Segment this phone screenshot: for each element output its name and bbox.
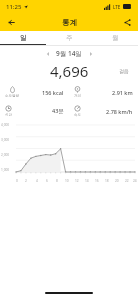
button[interactable]: Share	[120, 15, 134, 29]
button[interactable]: 월	[92, 31, 138, 45]
button[interactable]: 거리	[74, 85, 133, 99]
staticText: 통계	[62, 18, 77, 27]
staticText: 1,000	[1, 168, 16, 172]
staticText: 2.91 km	[112, 89, 133, 96]
staticText: 월	[112, 34, 119, 42]
staticText: 6	[46, 179, 48, 183]
button[interactable]: Back	[4, 15, 18, 29]
staticText: 주	[66, 34, 73, 42]
staticText: 2.78 km/h	[106, 108, 133, 115]
staticText: 11:25	[6, 3, 22, 11]
staticText: 16	[95, 179, 99, 183]
staticText: 43분	[52, 107, 64, 115]
staticText: 156 kcal	[42, 89, 64, 96]
staticText: 걸음	[119, 68, 129, 74]
staticText: 4,000	[1, 123, 16, 127]
staticText: 12	[75, 179, 79, 183]
staticText: 4,696	[50, 61, 89, 81]
staticText: 18	[105, 179, 109, 183]
staticText: 2,000	[1, 153, 16, 157]
staticText: 10	[65, 179, 69, 183]
button[interactable]: 속도	[74, 104, 133, 118]
button[interactable]: 주	[46, 31, 92, 45]
staticText: 소모열량	[5, 94, 19, 98]
staticText: 9월 14일	[56, 49, 82, 58]
staticText: 3,000	[1, 138, 16, 142]
button[interactable]: Next day	[85, 48, 96, 59]
staticText: 24	[133, 179, 137, 183]
staticText: 속도	[74, 113, 81, 117]
staticText: 20	[115, 179, 119, 183]
button[interactable]: 소모열량	[5, 85, 64, 99]
staticText: 8	[56, 179, 58, 183]
staticText: 거리	[74, 94, 81, 98]
staticText: 시간	[5, 113, 12, 117]
button[interactable]: 시간	[5, 104, 64, 118]
staticText: 일	[20, 34, 27, 42]
staticText: 0	[16, 179, 18, 183]
button[interactable]: 일	[0, 31, 46, 45]
button[interactable]: Previous day	[42, 48, 53, 59]
staticText: 4	[36, 179, 38, 183]
staticText: 14	[85, 179, 89, 183]
staticText: 2	[25, 179, 27, 183]
staticText: LTE	[113, 4, 121, 10]
staticText: 22	[125, 179, 129, 183]
